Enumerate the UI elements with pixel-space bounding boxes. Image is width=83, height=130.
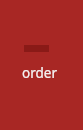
button[interactable]: order — [22, 45, 62, 80]
staticText: order — [22, 64, 57, 80]
